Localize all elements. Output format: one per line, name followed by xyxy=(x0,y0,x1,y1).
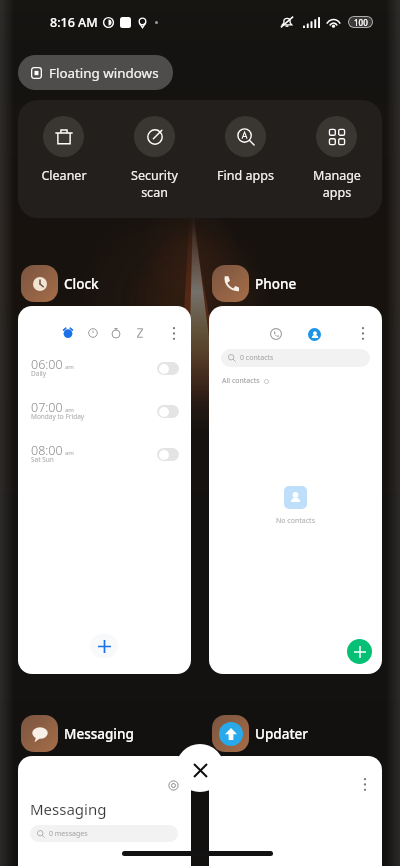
button[interactable]: Messaging xyxy=(18,756,191,866)
button[interactable]: 0 contacts xyxy=(221,349,370,367)
staticText: Daily xyxy=(31,369,47,378)
staticText: 0 messages xyxy=(49,829,88,839)
staticText: Security scan xyxy=(131,167,178,200)
staticText: Phone xyxy=(255,275,297,293)
button[interactable]: More options xyxy=(209,306,382,674)
staticText: 06:00 xyxy=(31,356,63,373)
button[interactable]: Find apps xyxy=(200,100,291,184)
staticText: 08:00 xyxy=(31,442,63,459)
button[interactable]: Messaging xyxy=(21,715,134,752)
button[interactable]: Floating windows xyxy=(18,55,173,90)
button[interactable]: Phone xyxy=(212,265,297,302)
button[interactable]: Updater xyxy=(212,715,309,752)
staticText: am xyxy=(65,363,74,371)
staticText: No contacts xyxy=(276,516,315,526)
button[interactable]: 0 messages xyxy=(30,825,178,842)
button[interactable]: Alarm tab xyxy=(63,328,73,338)
staticText: Sat Sun xyxy=(31,455,54,464)
staticText: am xyxy=(65,449,74,457)
button[interactable]: Manage apps xyxy=(291,100,382,200)
button[interactable]: Cleaner xyxy=(18,100,109,184)
staticText: 0 contacts xyxy=(240,353,274,363)
staticText: Monday to Friday xyxy=(31,412,85,421)
staticText: 07:00 xyxy=(31,399,63,416)
button[interactable]: Clock xyxy=(21,265,99,302)
staticText: Clock xyxy=(64,275,99,293)
staticText: 8:16 AM xyxy=(50,14,98,31)
staticText: Messaging xyxy=(64,725,134,743)
staticText: Manage apps xyxy=(313,167,361,200)
staticText: am xyxy=(65,406,74,414)
staticText: Find apps xyxy=(217,167,274,184)
other: More options xyxy=(363,778,367,791)
staticText: Floating windows xyxy=(49,64,159,82)
button[interactable]: More options xyxy=(209,756,382,866)
button[interactable]: Add contact xyxy=(347,639,372,664)
button[interactable]: Close all apps xyxy=(176,744,224,792)
button[interactable]: Security scan xyxy=(109,100,200,200)
button[interactable]: Toggle alarm 06:00 xyxy=(157,362,179,375)
button[interactable]: Alarm tab xyxy=(18,306,191,674)
button[interactable]: Toggle alarm 08:00 xyxy=(157,448,179,461)
button[interactable]: Add alarm xyxy=(90,634,118,658)
other: More options xyxy=(172,327,176,340)
staticText: Updater xyxy=(255,725,309,743)
staticText: Messaging xyxy=(30,799,107,819)
staticText: 100 xyxy=(354,17,368,27)
button[interactable]: Toggle alarm 07:00 xyxy=(157,405,179,418)
other: More options xyxy=(361,327,365,340)
staticText: Cleaner xyxy=(41,167,87,184)
staticText: All contacts xyxy=(222,376,260,386)
